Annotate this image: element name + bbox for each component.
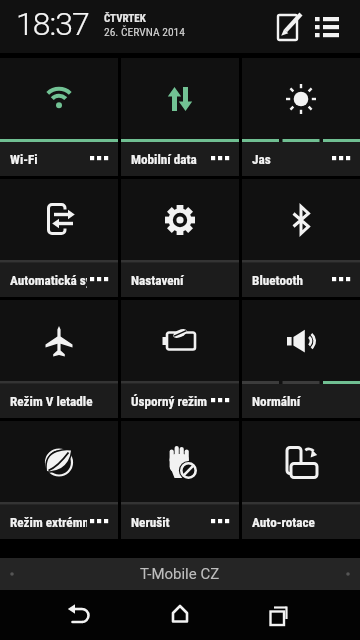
button[interactable]: Nerušit — [121, 421, 239, 539]
staticText: ČTVRTEK — [104, 12, 146, 25]
button[interactable]: Bluetooth — [242, 179, 360, 297]
staticText: Jas — [252, 152, 271, 167]
button[interactable]: Wi-Fi — [0, 58, 118, 176]
button[interactable]: Normální — [242, 300, 360, 418]
staticText: 26. ČERVNA 2014 — [104, 25, 185, 38]
button[interactable] — [252, 590, 300, 640]
button[interactable]: Automatická synchronizace — [0, 179, 118, 297]
button[interactable]: Auto-rotace — [242, 421, 360, 539]
button[interactable]: Nastavení — [121, 179, 239, 297]
button[interactable]: Režim extrémní úspory — [0, 421, 118, 539]
button[interactable]: Mobilní data — [121, 58, 239, 176]
button[interactable] — [156, 590, 204, 640]
staticText: Režim V letadle — [10, 394, 93, 409]
staticText: Nastavení — [131, 273, 184, 288]
staticText: 18:37 — [16, 5, 89, 43]
button[interactable]: Jas — [242, 58, 360, 176]
staticText: Nerušit — [131, 515, 170, 530]
button[interactable] — [60, 590, 108, 640]
button[interactable] — [268, 9, 308, 49]
staticText: Úsporný režim — [131, 394, 208, 409]
button[interactable] — [308, 10, 348, 46]
staticText: Automatická synchronizace — [10, 273, 87, 288]
button[interactable]: Úsporný režim — [121, 300, 239, 418]
staticText: Normální — [252, 394, 301, 409]
staticText: Režim extrémní úspory — [10, 515, 87, 530]
staticText: Auto-rotace — [252, 515, 315, 530]
staticText: Mobilní data — [131, 152, 197, 167]
button[interactable]: Režim V letadle — [0, 300, 118, 418]
staticText: Bluetooth — [252, 273, 304, 288]
staticText: Wi-Fi — [10, 152, 38, 167]
staticText: T-Mobile CZ — [140, 565, 220, 583]
